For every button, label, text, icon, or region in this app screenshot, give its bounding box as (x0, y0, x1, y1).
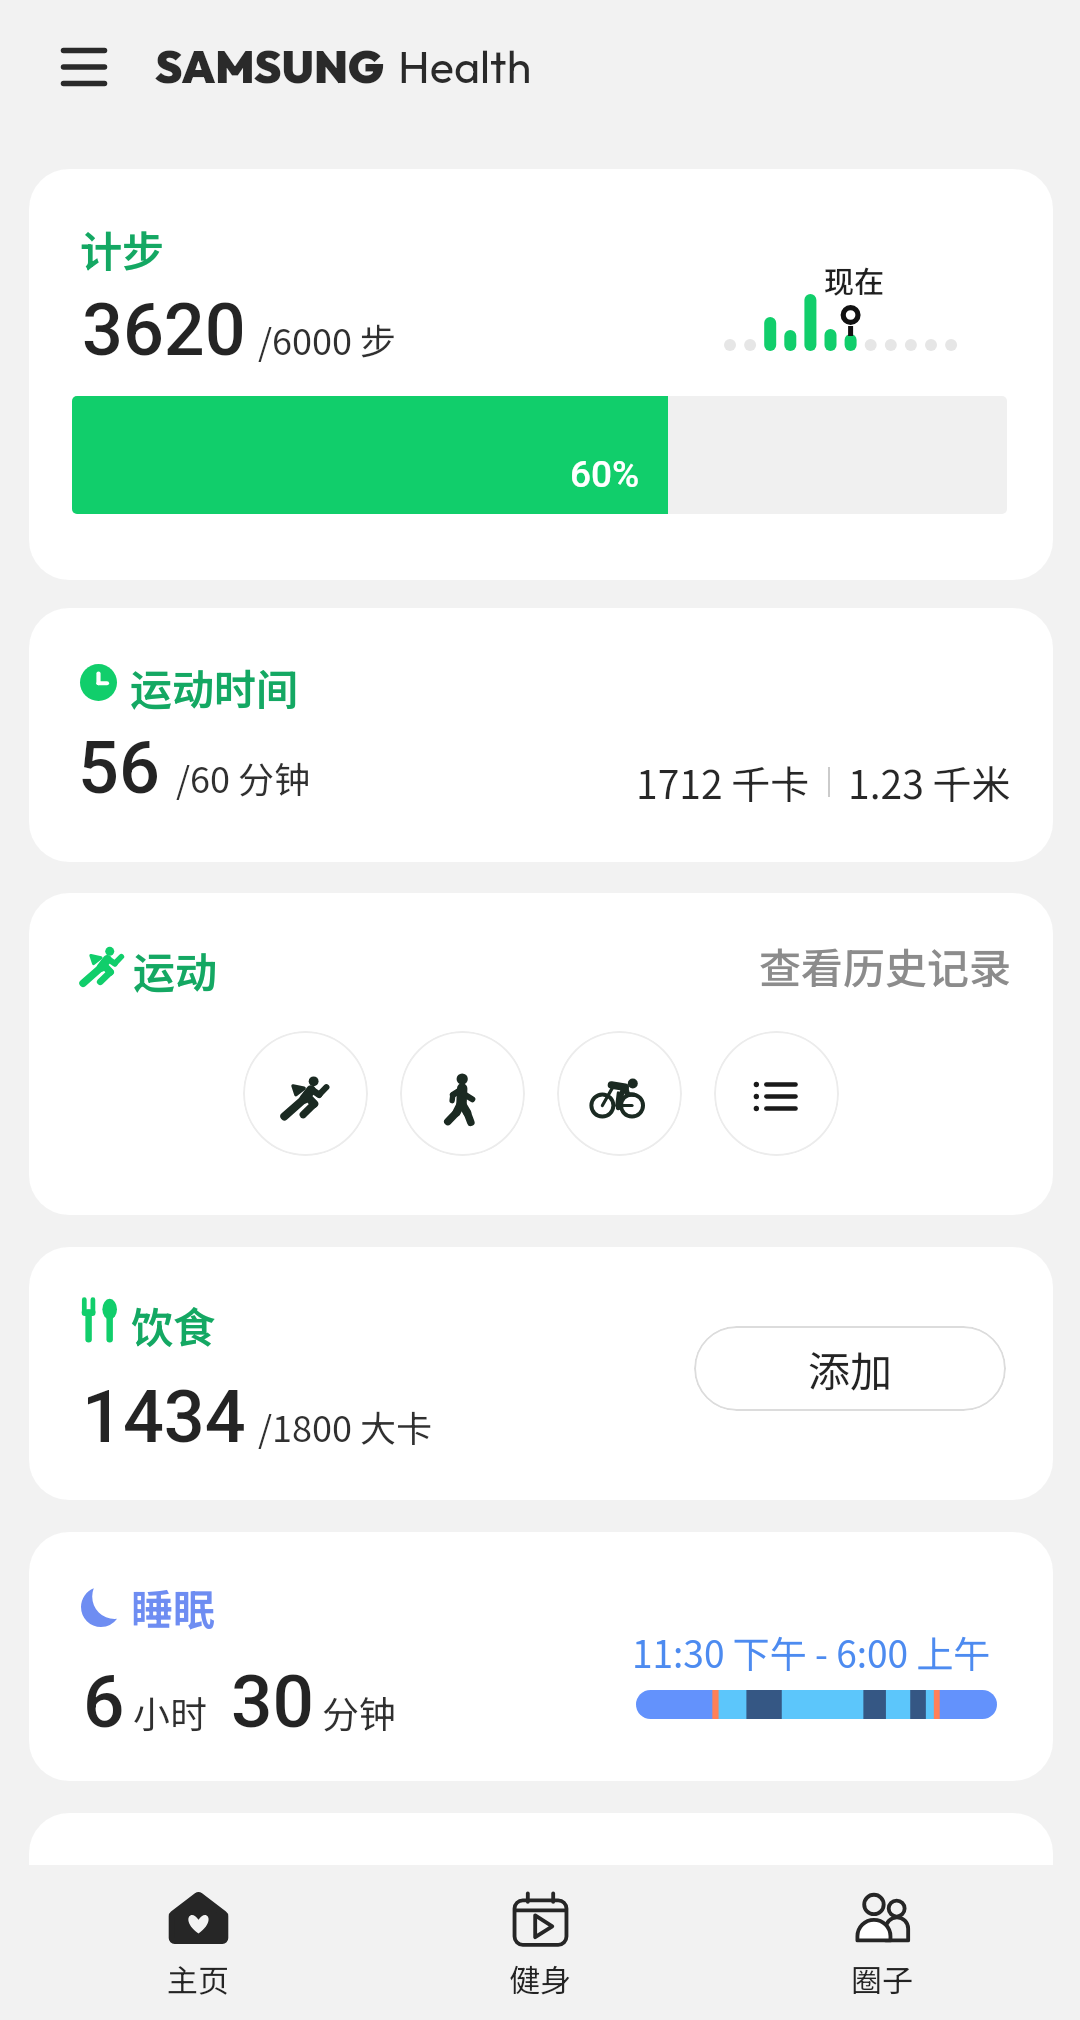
staticText: 60% (570, 453, 640, 496)
button[interactable]: Running (243, 1031, 368, 1156)
button[interactable]: 计步 (29, 169, 1053, 580)
staticText: 现在 (824, 258, 884, 301)
staticText: 计步 (80, 218, 165, 279)
staticText: /60 分钟 (176, 751, 311, 803)
button[interactable]: Cycling (557, 1031, 682, 1156)
button[interactable]: Walking (400, 1031, 525, 1156)
button[interactable]: 查看历史记录 (749, 925, 1022, 1006)
staticText: 睡眠 (131, 1576, 216, 1637)
staticText: 查看历史记录 (759, 935, 1012, 996)
button[interactable]: More exercises (714, 1031, 839, 1156)
staticText: /1800 大卡 (258, 1400, 433, 1452)
staticText: 主页 (167, 1956, 229, 2001)
button[interactable]: Menu (50, 33, 118, 101)
button[interactable] (29, 1813, 1053, 1913)
staticText: 分钟 (322, 1685, 396, 1739)
staticText: 3620 (82, 288, 246, 372)
staticText: 56 (78, 726, 160, 810)
button[interactable]: 运动 (29, 893, 1053, 1215)
staticText: 圈子 (851, 1956, 913, 2001)
staticText: 1.23 千米 (848, 754, 1011, 810)
staticText: 运动时间 (130, 656, 299, 717)
button[interactable]: 主页 (83, 1872, 313, 2012)
staticText: 6 (83, 1659, 125, 1745)
staticText: 饮食 (131, 1294, 216, 1355)
staticText: 运动 (133, 939, 218, 1000)
staticText: 30 (231, 1659, 314, 1745)
staticText: 健身 (509, 1956, 571, 2001)
staticText: 小时 (133, 1685, 207, 1739)
staticText: 11:30 下午 - 6:00 上午 (632, 1625, 991, 1679)
staticText: /6000 步 (258, 313, 397, 365)
button[interactable]: 添加 (694, 1326, 1006, 1411)
button[interactable]: 圈子 (767, 1872, 997, 2012)
staticText: 添加 (808, 1338, 893, 1399)
button[interactable]: 睡眠 (29, 1532, 1053, 1781)
staticText: 1712 千卡 (636, 754, 810, 810)
button[interactable]: 饮食 (29, 1247, 1053, 1500)
staticText: 1434 (82, 1375, 246, 1459)
staticText: Health (398, 38, 532, 95)
button[interactable]: 运动时间 (29, 608, 1053, 862)
button[interactable]: 健身 (425, 1872, 655, 2012)
staticText: SAMSUNG (155, 38, 384, 95)
